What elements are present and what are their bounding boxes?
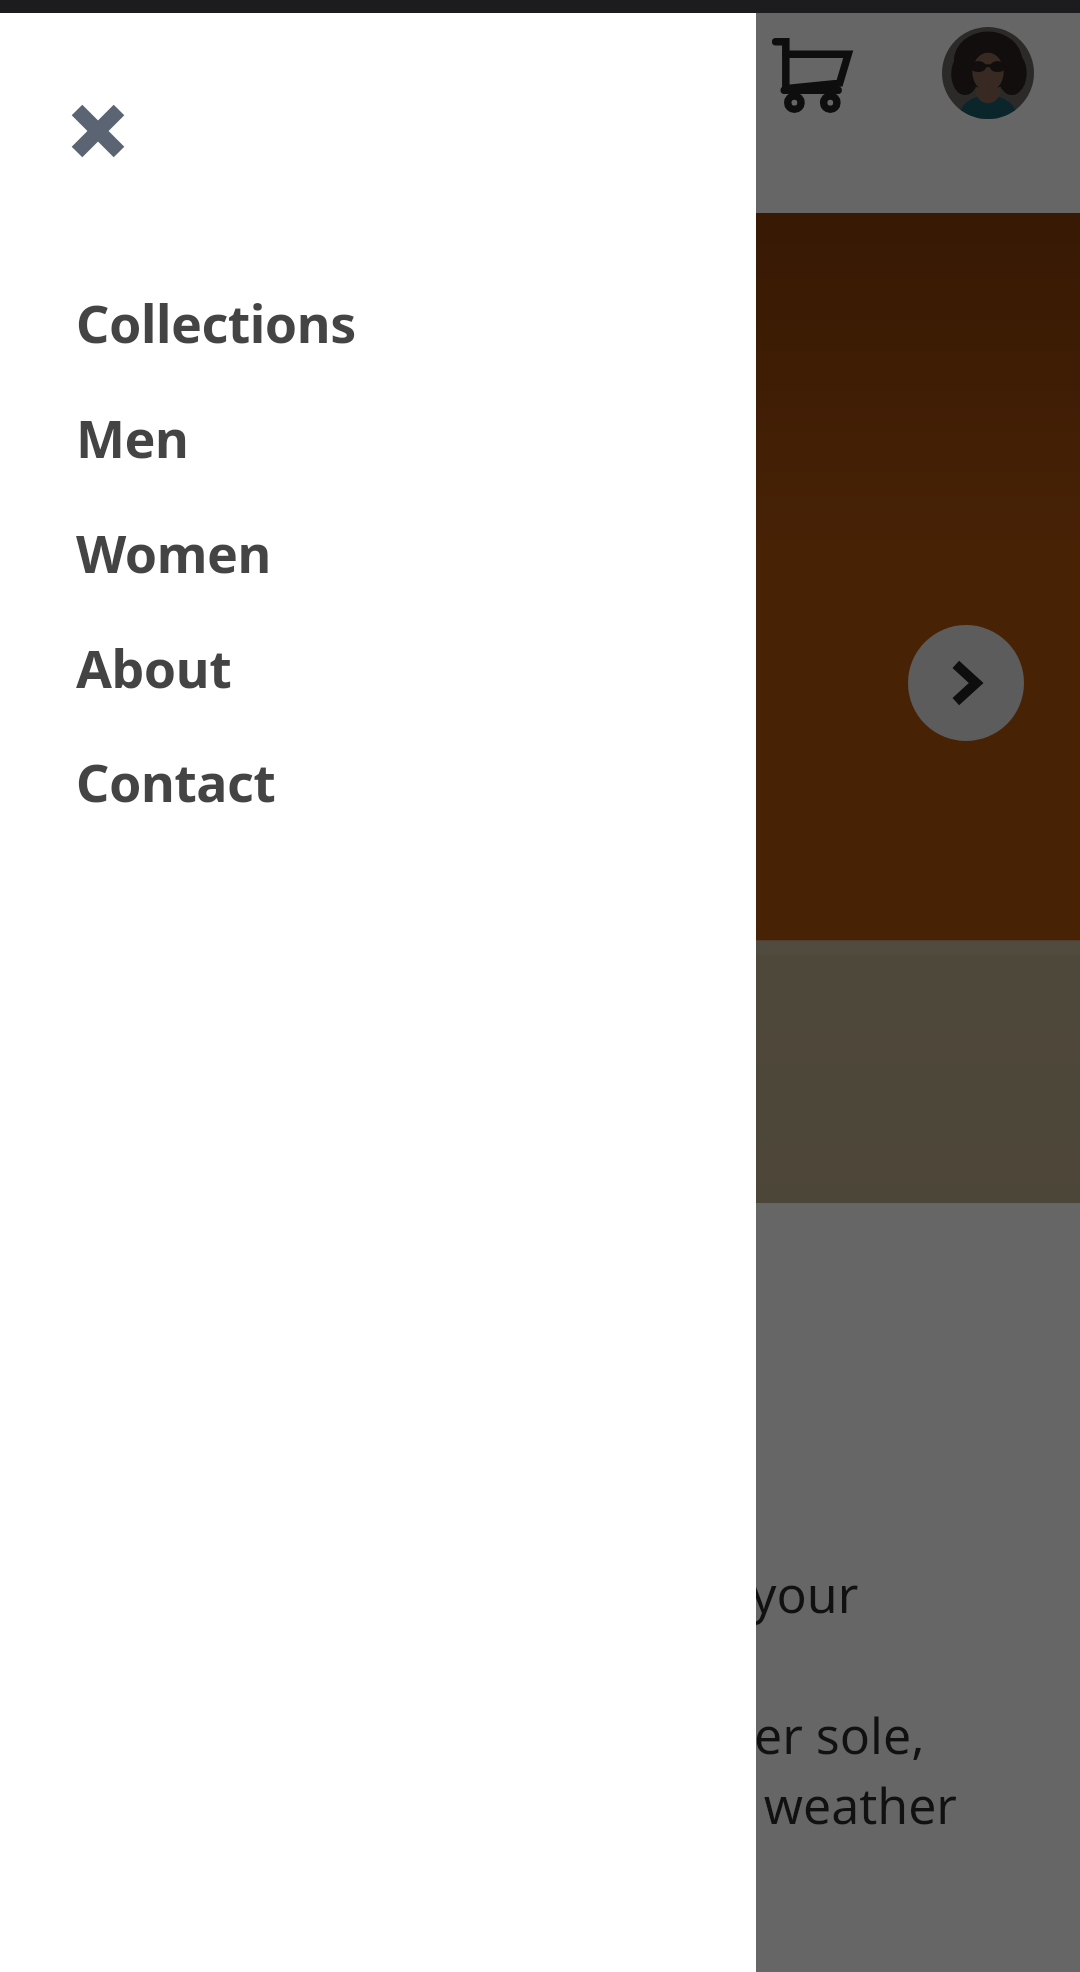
button[interactable]: Close menu <box>48 81 148 181</box>
staticText: Women <box>76 517 271 588</box>
staticText: A minimal sneaker to elevate your everyd… <box>60 1560 957 1909</box>
button[interactable]: Men <box>0 398 756 508</box>
button[interactable]: Close menu <box>0 13 1080 1972</box>
button[interactable]: About <box>0 628 756 738</box>
button[interactable]: Contact <box>0 742 756 852</box>
button[interactable]: Cart <box>750 13 870 133</box>
button[interactable]: Women <box>0 513 756 623</box>
staticText: About <box>76 632 232 703</box>
staticText: Contact <box>76 746 276 817</box>
button[interactable]: Next image <box>908 625 1024 741</box>
staticText: Collections <box>76 287 356 358</box>
button[interactable]: Profile <box>942 27 1034 119</box>
staticText: Men <box>76 402 189 473</box>
button[interactable]: Collections <box>0 283 756 393</box>
